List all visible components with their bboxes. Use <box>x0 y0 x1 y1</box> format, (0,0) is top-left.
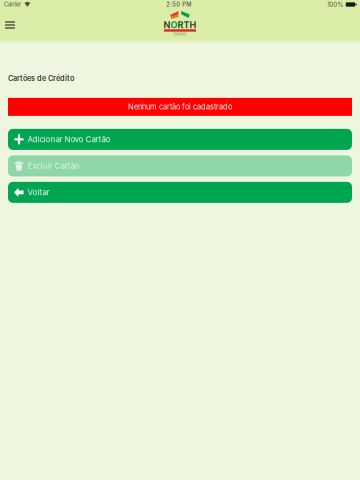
staticText: O <box>170 20 177 31</box>
staticText: Adicionar Novo Cartão <box>27 135 110 144</box>
button[interactable]: Menu <box>0 15 23 35</box>
staticText: 2:50 PM <box>166 1 191 8</box>
staticText: 100% <box>327 1 343 8</box>
staticText: Nenhum cartão foi cadastrado <box>128 102 232 111</box>
staticText: Cartões de Crédito <box>8 74 74 83</box>
staticText: Carrier <box>4 1 21 8</box>
staticText: N <box>163 20 170 31</box>
button[interactable]: Adicionar Novo Cartão <box>8 129 352 150</box>
button[interactable]: Excluir Cartão <box>8 155 352 176</box>
staticText: Excluir Cartão <box>27 161 79 171</box>
staticText: Voltar <box>27 188 49 197</box>
button[interactable]: Voltar <box>8 182 352 203</box>
staticText: RTH <box>177 20 196 31</box>
staticText: imóveis <box>173 32 186 36</box>
